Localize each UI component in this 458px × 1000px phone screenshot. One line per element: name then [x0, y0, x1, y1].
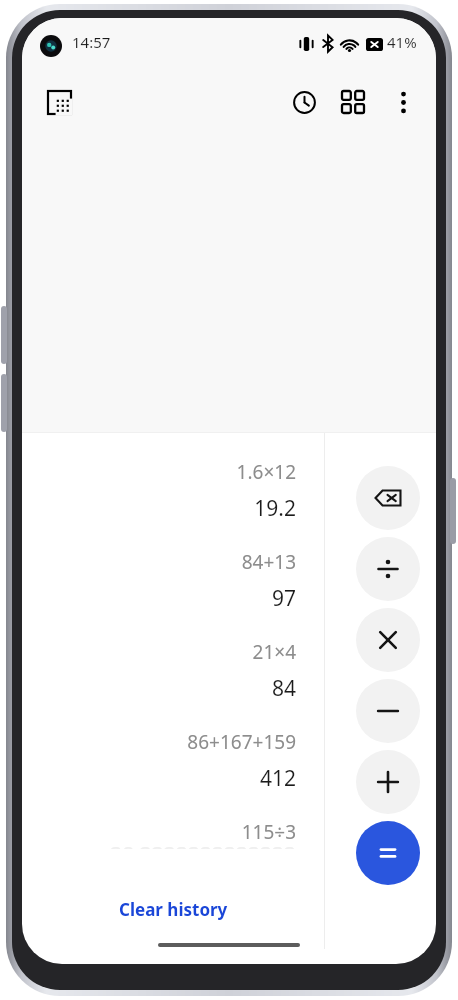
staticText: 19.2: [22, 494, 296, 523]
staticText: 84+13: [22, 549, 296, 575]
button[interactable]: Equals: [356, 821, 420, 885]
staticText: 412: [22, 764, 296, 793]
button[interactable]: More options: [382, 81, 424, 123]
staticText: 1.6×12: [22, 459, 296, 485]
staticText: 21×4: [22, 639, 296, 665]
staticText: 115÷3: [22, 819, 296, 845]
button[interactable]: Converter: [332, 81, 374, 123]
staticText: 86+167+159: [22, 729, 296, 755]
staticText: 97: [22, 584, 296, 613]
button[interactable]: Scientific keypad: [38, 81, 80, 123]
button[interactable]: Divide: [356, 537, 420, 601]
staticText: Clear history: [119, 898, 228, 921]
staticText: 41%: [387, 32, 417, 52]
button[interactable]: Multiply: [356, 608, 420, 672]
button[interactable]: History: [283, 81, 325, 123]
button[interactable]: Backspace: [356, 466, 420, 530]
staticText: 84: [22, 674, 296, 703]
staticText: 14:57: [72, 32, 111, 52]
button[interactable]: Subtract: [356, 679, 420, 743]
staticText: 38.3333333333333: [22, 841, 296, 849]
button[interactable]: Clear history: [101, 890, 246, 929]
button[interactable]: Add: [356, 750, 420, 814]
